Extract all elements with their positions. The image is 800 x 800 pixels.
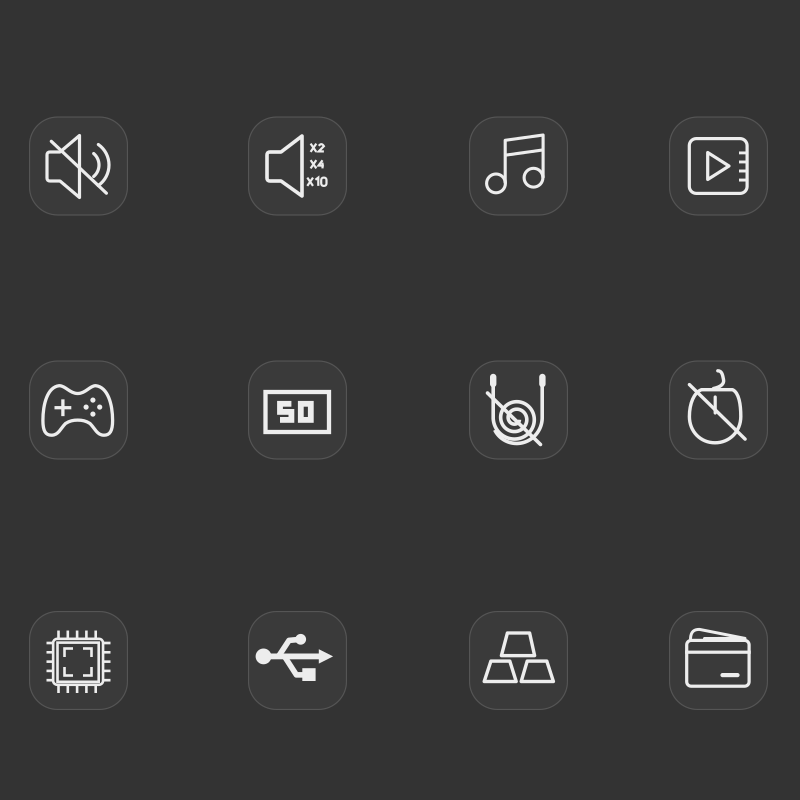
button[interactable]: USB — [248, 611, 347, 710]
button[interactable]: No cable — [469, 360, 568, 459]
button[interactable]: Wallet — [669, 611, 768, 710]
button[interactable]: Gold bars — [469, 611, 568, 710]
button[interactable]: No mouse — [669, 360, 768, 459]
button[interactable]: Volume multiplier — [248, 116, 347, 215]
button[interactable]: Processor — [29, 611, 128, 710]
button[interactable]: Mute — [29, 116, 128, 215]
button[interactable]: Display 50 — [248, 360, 347, 459]
button[interactable]: Video speed — [669, 116, 768, 215]
button[interactable]: Game controller — [29, 360, 128, 459]
button[interactable]: Music — [469, 116, 568, 215]
